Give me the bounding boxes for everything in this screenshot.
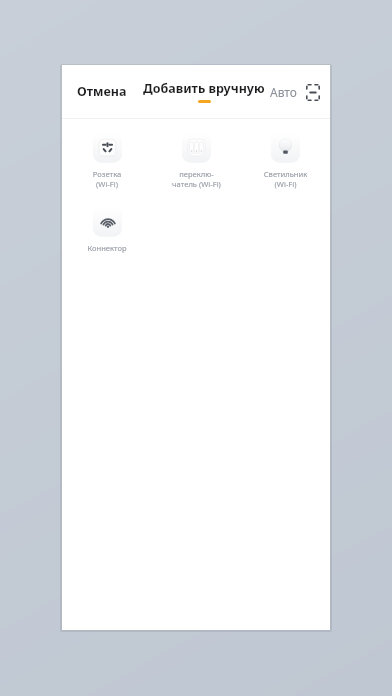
button[interactable]: Коннектор (62, 203, 152, 255)
staticText: Авто (270, 84, 297, 100)
staticText: Коннектор (66, 243, 148, 253)
staticText: Светильник (Wi-Fi) (245, 169, 326, 189)
button[interactable]: Авто (268, 78, 299, 106)
button[interactable]: переклю- чатель (Wi-Fi) (152, 129, 241, 191)
button[interactable]: Добавить вручную (140, 78, 268, 105)
button[interactable]: Светильник (Wi-Fi) (241, 129, 330, 191)
button[interactable]: Scan QR code (306, 80, 320, 104)
staticText: Отмена (77, 83, 127, 100)
button[interactable]: Розетка (Wi-Fi) (62, 129, 152, 191)
button[interactable]: Отмена (74, 77, 130, 106)
staticText: Добавить вручную (143, 80, 265, 97)
staticText: переклю- чатель (Wi-Fi) (156, 169, 237, 189)
staticText: Розетка (Wi-Fi) (66, 169, 148, 189)
